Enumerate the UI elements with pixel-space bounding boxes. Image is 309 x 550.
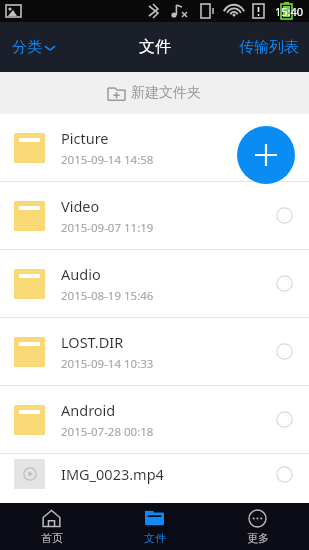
staticText: Audio [61,264,101,284]
staticText: 2015-09-14 10:33 [61,356,154,372]
staticText: Android [61,400,116,420]
staticText: 分类 [12,38,42,57]
staticText: 文件 [139,37,171,57]
button[interactable]: 分类 [10,32,57,63]
staticText: Video [61,196,100,216]
staticText: 更多 [247,531,269,545]
staticText: 2015-07-28 00:18 [61,424,154,440]
staticText: 文件 [144,531,166,545]
button[interactable]: Audio [0,250,309,317]
button[interactable]: Video [0,182,309,249]
button[interactable]: LOST.DIR [0,318,309,385]
staticText: Picture [61,128,109,148]
staticText: 2015-09-07 11:19 [61,220,154,236]
button[interactable]: Add [237,126,295,184]
staticText: 15:40 [275,4,304,19]
button[interactable]: IMG_0023.mp4 [0,454,309,494]
staticText: 首页 [41,531,63,545]
button[interactable]: 首页 [0,503,103,550]
button[interactable]: Android [0,386,309,453]
button[interactable]: 传输列表 [229,30,309,65]
button[interactable]: Picture [0,114,309,181]
staticText: 2015-08-19 15:46 [61,288,154,304]
button[interactable]: 新建文件夹 [0,72,309,114]
staticText: LOST.DIR [61,332,124,352]
staticText: IMG_0023.mp4 [61,464,164,484]
button[interactable]: 更多 [206,503,309,550]
button[interactable]: 文件 [103,503,206,550]
staticText: 新建文件夹 [131,84,201,102]
staticText: 2015-09-14 14:58 [61,152,154,168]
